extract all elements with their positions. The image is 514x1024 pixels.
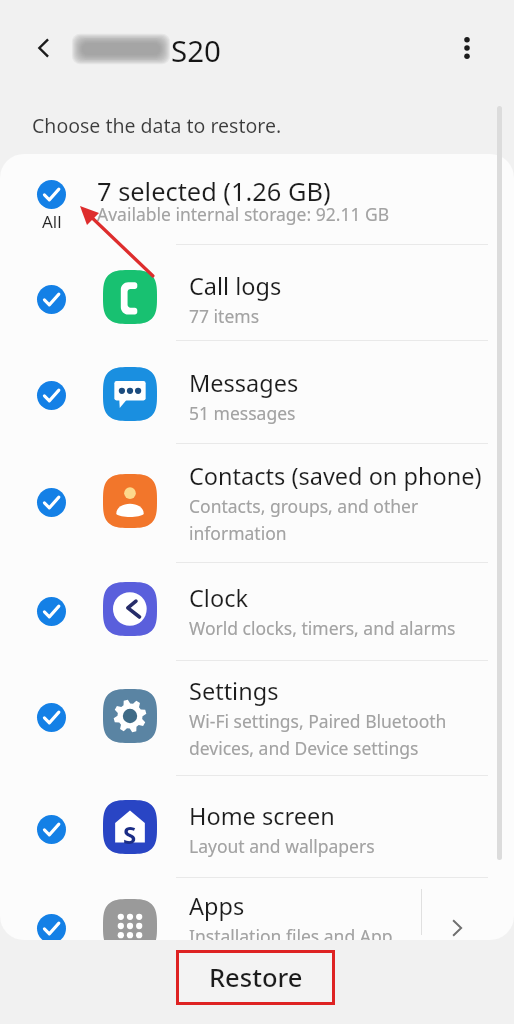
button[interactable]: Apps — [0, 877, 514, 940]
button[interactable]: Settings — [0, 660, 514, 775]
staticText: All — [42, 210, 62, 233]
staticText: 7 selected (1.26 GB) — [97, 174, 331, 209]
button[interactable]: More options — [445, 26, 489, 70]
staticText: Contacts (saved on phone) — [189, 460, 482, 492]
staticText: 51 messages — [189, 401, 296, 425]
staticText: Messages — [189, 367, 299, 399]
staticText: Contacts, groups, and other information — [189, 494, 419, 545]
staticText: S — [123, 818, 137, 851]
staticText: S20 — [171, 30, 221, 70]
staticText: Home screen — [189, 800, 335, 832]
button[interactable]: Open Apps details — [434, 877, 480, 940]
button[interactable]: Call logs — [0, 244, 514, 340]
button[interactable]: Messages — [0, 340, 514, 443]
staticText: Settings — [189, 675, 279, 707]
button[interactable]: All — [0, 154, 514, 244]
staticText: Apps — [189, 890, 245, 922]
staticText: 77 items — [189, 304, 260, 328]
button[interactable]: S — [0, 775, 514, 877]
staticText: Installation files and App — [189, 924, 393, 940]
staticText: Clock — [189, 582, 248, 614]
button[interactable]: Contacts (saved on phone) — [0, 443, 514, 562]
staticText: Wi-Fi settings, Paired Bluetooth devices… — [189, 709, 447, 760]
staticText: Available internal storage: 92.11 GB — [97, 202, 390, 226]
button[interactable]: Restore — [179, 953, 332, 1002]
button[interactable]: Clock — [0, 562, 514, 660]
staticText: World clocks, timers, and alarms — [189, 616, 456, 640]
staticText: Call logs — [189, 270, 282, 302]
staticText: Layout and wallpapers — [189, 834, 375, 858]
staticText: Choose the data to restore. — [32, 112, 282, 139]
button[interactable]: Navigate up — [22, 26, 66, 70]
staticText: Restore — [209, 960, 303, 995]
